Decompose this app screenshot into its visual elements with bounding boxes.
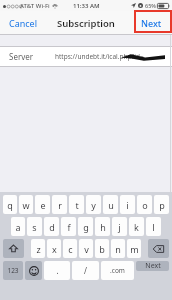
button[interactable]: .: [44, 261, 70, 280]
staticText: z: [36, 243, 41, 255]
staticText: h: [100, 221, 106, 233]
staticText: 11:33 AM: [73, 2, 100, 10]
staticText: n: [115, 243, 121, 255]
staticText: b: [99, 243, 105, 255]
staticText: t: [75, 199, 79, 211]
button[interactable]: Backspace: [148, 239, 169, 258]
button[interactable]: Emoji keyboard: [25, 261, 42, 280]
button[interactable]: q: [3, 195, 17, 214]
button[interactable]: r: [52, 195, 67, 214]
button[interactable]: m: [127, 239, 141, 258]
button[interactable]: h: [95, 217, 110, 236]
button[interactable]: Server: [0, 47, 172, 66]
button[interactable]: 123: [3, 261, 23, 280]
button[interactable]: Next: [136, 261, 169, 271]
button[interactable]: .com: [101, 261, 134, 280]
staticText: Subscription: [57, 17, 115, 30]
staticText: .com: [110, 266, 125, 275]
button[interactable]: k: [129, 217, 144, 236]
staticText: .: [56, 265, 59, 276]
staticText: Next: [145, 261, 161, 271]
button[interactable]: j: [112, 217, 127, 236]
staticText: k: [134, 221, 139, 233]
staticText: Cancel: [9, 17, 38, 29]
staticText: /: [84, 265, 87, 276]
button[interactable]: d: [44, 217, 59, 236]
staticText: AT&T Wi-Fi: [20, 2, 50, 10]
staticText: m: [130, 243, 139, 255]
staticText: q: [7, 199, 13, 211]
button[interactable]: t: [69, 195, 84, 214]
staticText: l: [152, 221, 155, 233]
staticText: 123: [7, 266, 19, 275]
button[interactable]: a: [11, 217, 25, 236]
staticText: e: [40, 199, 46, 211]
staticText: c: [68, 243, 73, 255]
button[interactable]: c: [63, 239, 77, 258]
button[interactable]: u: [103, 195, 118, 214]
staticText: d: [49, 221, 55, 233]
button[interactable]: n: [111, 239, 125, 258]
button[interactable]: o: [137, 195, 152, 214]
staticText: a: [15, 221, 21, 233]
button[interactable]: g: [78, 217, 93, 236]
button[interactable]: Cancel: [0, 13, 47, 33]
button[interactable]: /: [72, 261, 99, 280]
staticText: u: [108, 199, 114, 211]
staticText: w: [22, 199, 30, 211]
button[interactable]: f: [61, 217, 76, 236]
button[interactable]: x: [47, 239, 61, 258]
staticText: y: [91, 199, 96, 211]
staticText: o: [142, 199, 148, 211]
button[interactable]: p: [154, 195, 169, 214]
staticText: p: [159, 199, 165, 211]
staticText: f: [67, 221, 71, 233]
button[interactable]: z: [31, 239, 45, 258]
button[interactable]: v: [79, 239, 93, 258]
staticText: g: [83, 221, 89, 233]
button[interactable]: s: [27, 217, 42, 236]
button[interactable]: b: [95, 239, 109, 258]
button[interactable]: i: [120, 195, 135, 214]
staticText: Next: [141, 17, 162, 29]
button[interactable]: Shift: [3, 239, 24, 258]
button[interactable]: Next: [131, 13, 172, 33]
staticText: v: [84, 243, 89, 255]
staticText: s: [32, 221, 37, 233]
staticText: x: [52, 243, 57, 255]
staticText: https://undebt.it/ical.php?id=: [55, 52, 144, 61]
button[interactable]: l: [146, 217, 161, 236]
staticText: 65%: [145, 2, 156, 9]
staticText: r: [58, 199, 62, 211]
button[interactable]: w: [19, 195, 33, 214]
button[interactable]: y: [86, 195, 101, 214]
staticText: j: [118, 221, 121, 233]
staticText: i: [126, 199, 129, 211]
staticText: Server: [9, 51, 34, 62]
button[interactable]: e: [35, 195, 50, 214]
